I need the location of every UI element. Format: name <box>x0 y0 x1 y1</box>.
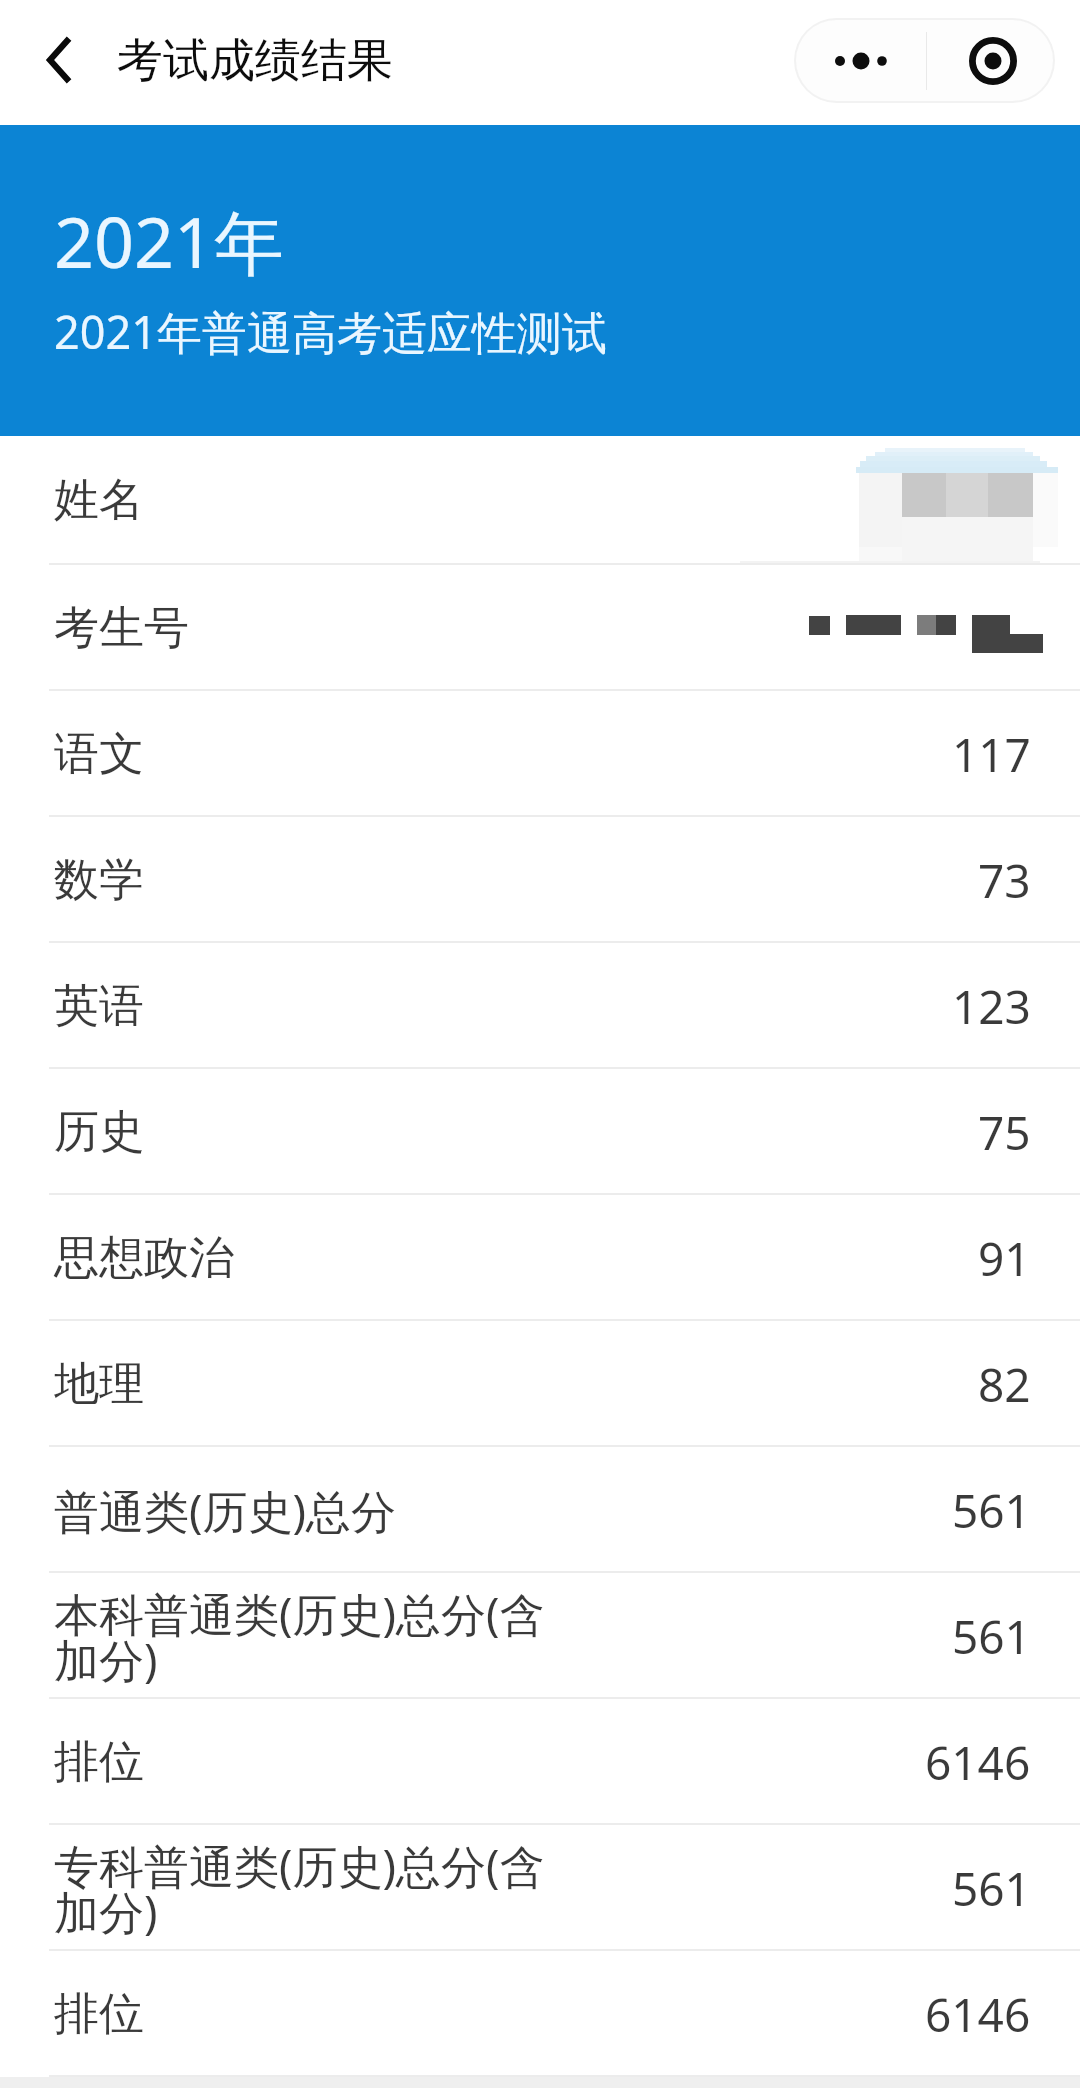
staticText: 6146 <box>925 1731 1031 1794</box>
button[interactable]: 排位 <box>0 1699 1080 1825</box>
staticText: 6146 <box>925 1983 1031 2046</box>
staticText: 姓名 <box>54 472 144 529</box>
button[interactable]: 专科普通类(历史)总分(含 加分) <box>0 1825 1080 1951</box>
button[interactable]: 数学 <box>0 817 1080 943</box>
button[interactable]: 本科普通类(历史)总分(含 加分) <box>0 1573 1080 1699</box>
button[interactable]: 地理 <box>0 1321 1080 1447</box>
staticText: 561 <box>952 1605 1031 1668</box>
staticText: 历史 <box>54 1104 966 1161</box>
staticText: 数学 <box>54 852 966 909</box>
button[interactable]: 姓名 <box>0 436 1080 565</box>
button[interactable]: More options <box>796 20 926 101</box>
button[interactable]: 语文 <box>0 691 1080 817</box>
button[interactable]: 英语 <box>0 943 1080 1069</box>
staticText: 专科普通类(历史)总分(含 加分) <box>54 1835 940 1942</box>
button[interactable]: 考生号 <box>0 565 1080 691</box>
staticText: 123 <box>952 975 1031 1038</box>
staticText: 2021年 <box>54 193 285 289</box>
staticText: 考试成绩结果 <box>117 32 393 90</box>
button[interactable]: Close mini program <box>927 20 1053 101</box>
button[interactable]: Back <box>22 24 94 96</box>
staticText: 排位 <box>54 1986 913 2043</box>
staticText: 地理 <box>54 1356 966 1413</box>
staticText: 561 <box>952 1479 1031 1542</box>
staticText: 75 <box>978 1101 1031 1164</box>
button[interactable]: 普通类(历史)总分 <box>0 1447 1080 1573</box>
staticText: 语文 <box>54 726 940 783</box>
staticText: 82 <box>978 1353 1031 1416</box>
staticText: 2021年普通高考适应性测试 <box>54 301 607 362</box>
button[interactable]: 历史 <box>0 1069 1080 1195</box>
staticText: 考生号 <box>54 600 189 657</box>
staticText: 117 <box>952 723 1031 786</box>
staticText: 普通类(历史)总分 <box>54 1480 940 1541</box>
staticText: 排位 <box>54 1734 913 1791</box>
staticText: 561 <box>952 1857 1031 1920</box>
button[interactable]: 思想政治 <box>0 1195 1080 1321</box>
staticText: 91 <box>978 1227 1031 1290</box>
staticText: 思想政治 <box>54 1230 966 1287</box>
staticText: 本科普通类(历史)总分(含 加分) <box>54 1583 940 1690</box>
staticText: 73 <box>978 849 1031 912</box>
button[interactable]: 排位 <box>0 1951 1080 2077</box>
staticText: 英语 <box>54 978 940 1035</box>
